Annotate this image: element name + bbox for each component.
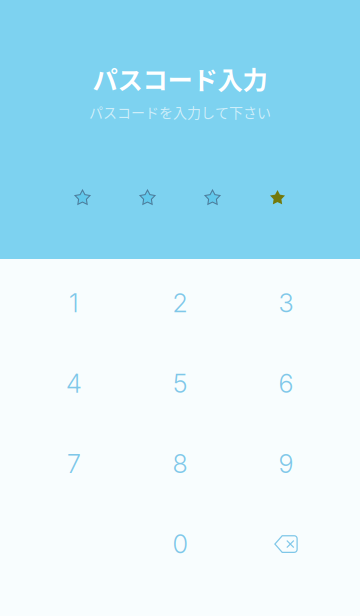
staticText: 5	[173, 368, 187, 399]
button[interactable]: 6	[233, 343, 339, 424]
staticText: 8	[172, 448, 187, 479]
staticText: 2	[172, 288, 187, 318]
staticText: 1	[69, 288, 79, 318]
button[interactable]: 8	[127, 424, 233, 504]
staticText: 6	[278, 368, 293, 399]
button[interactable]: 1	[21, 263, 127, 343]
staticText: パスコードを入力して下さい	[89, 102, 271, 122]
staticText: 7	[67, 448, 81, 479]
button[interactable]: 2	[127, 263, 233, 343]
button[interactable]: 5	[127, 343, 233, 424]
button[interactable]: 4	[21, 343, 127, 424]
button[interactable]: 3	[233, 263, 339, 343]
staticText: 3	[278, 288, 293, 318]
button[interactable]: 7	[21, 424, 127, 504]
staticText: パスコード入力	[92, 60, 267, 97]
button[interactable]: 0	[127, 504, 233, 584]
button[interactable]: Delete	[233, 504, 339, 584]
staticText: 0	[172, 529, 187, 559]
button[interactable]: 9	[233, 424, 339, 504]
staticText: 4	[66, 368, 82, 399]
staticText: 9	[278, 448, 293, 479]
